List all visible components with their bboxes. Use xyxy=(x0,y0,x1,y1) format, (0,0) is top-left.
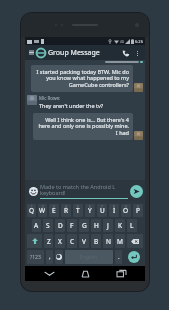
button[interactable]: ?123 xyxy=(27,250,44,264)
staticText: Made to match the Android L keyboard! xyxy=(40,183,128,197)
staticText: 2 xyxy=(42,205,44,209)
button[interactable]: D xyxy=(55,219,65,232)
button[interactable]: 2 xyxy=(38,204,47,217)
button[interactable]: H xyxy=(91,219,101,232)
staticText: A xyxy=(34,221,39,230)
staticText: 9 xyxy=(125,205,127,209)
button[interactable]: K xyxy=(115,219,125,232)
staticText: English xyxy=(80,254,98,261)
button[interactable]: F xyxy=(67,219,77,232)
button[interactable]: Emoji xyxy=(27,185,39,197)
button[interactable]: Send xyxy=(130,185,143,198)
staticText: 5 xyxy=(77,205,79,209)
button[interactable]: I started packing today BTW. Mic do you … xyxy=(31,65,133,92)
staticText: B xyxy=(94,237,99,246)
staticText: 7 xyxy=(101,205,103,209)
staticText: 1 xyxy=(31,205,33,209)
staticText: M xyxy=(117,237,123,246)
button[interactable]: Recent apps xyxy=(109,266,133,281)
staticText: G xyxy=(82,221,87,230)
staticText: 4 xyxy=(65,205,67,209)
staticText: E xyxy=(52,206,56,215)
button[interactable]: 3 xyxy=(49,204,59,217)
staticText: O xyxy=(123,206,129,215)
staticText: 3 xyxy=(53,205,55,209)
button[interactable]: Shift xyxy=(27,234,42,248)
staticText: K xyxy=(118,221,123,230)
button[interactable]: Enter xyxy=(128,251,140,263)
button[interactable]: S xyxy=(43,219,53,232)
staticText: 8 xyxy=(113,205,115,209)
button[interactable]: Well I think one is... But there's 4 her… xyxy=(33,113,133,140)
button[interactable]: Home xyxy=(73,266,97,281)
staticText: T xyxy=(76,206,80,215)
button[interactable]: 4 xyxy=(61,204,71,217)
button[interactable]: , xyxy=(46,250,53,264)
button[interactable]: B xyxy=(91,234,101,248)
staticText: 6 xyxy=(89,205,91,209)
staticText: P xyxy=(136,206,140,215)
button[interactable]: 8 xyxy=(109,204,119,217)
button[interactable]: 5 xyxy=(73,204,83,217)
staticText: F xyxy=(70,221,74,230)
button[interactable]: Menu xyxy=(28,49,35,56)
button[interactable]: More options xyxy=(132,48,142,58)
staticText: I started packing today BTW. Mic do you … xyxy=(35,68,129,89)
button[interactable]: Made to match the Android L keyboard! xyxy=(40,183,128,199)
button[interactable]: A xyxy=(32,219,41,232)
button[interactable]: G xyxy=(79,219,89,232)
button[interactable]: C xyxy=(67,234,77,248)
button[interactable]: 6 xyxy=(85,204,95,217)
staticText: ?123 xyxy=(30,254,41,261)
button[interactable]: App logo xyxy=(35,47,46,58)
staticText: 6:26 xyxy=(135,39,143,44)
button[interactable]: Call xyxy=(120,47,132,59)
button[interactable]: L xyxy=(127,219,137,232)
button[interactable]: M xyxy=(115,234,125,248)
button[interactable]: Mic Rowe: xyxy=(39,95,139,109)
button[interactable]: Z xyxy=(44,234,53,248)
button[interactable]: V xyxy=(79,234,89,248)
staticText: X xyxy=(58,237,62,246)
staticText: They aren't under the tv? xyxy=(39,102,104,109)
staticText: Well I think one is... But there's 4 her… xyxy=(37,116,129,137)
button[interactable]: X xyxy=(55,234,65,248)
button[interactable]: J xyxy=(103,219,113,232)
button[interactable]: 1 xyxy=(27,204,36,217)
button[interactable]: Change language xyxy=(55,250,63,264)
staticText: C xyxy=(70,237,75,246)
button[interactable]: N xyxy=(103,234,113,248)
staticText: Y xyxy=(88,206,92,215)
staticText: Z xyxy=(47,237,51,246)
staticText: . xyxy=(118,253,120,261)
staticText: Group Message xyxy=(48,48,100,58)
staticText: V xyxy=(82,237,86,246)
button[interactable]: Backspace xyxy=(127,234,143,248)
staticText: W xyxy=(39,206,46,215)
staticText: L xyxy=(130,221,134,230)
staticText: 0 xyxy=(137,205,139,209)
staticText: J xyxy=(107,221,109,230)
staticText: H xyxy=(94,221,99,230)
button[interactable]: 9 xyxy=(121,204,131,217)
staticText: D xyxy=(58,221,63,230)
staticText: , xyxy=(49,253,51,261)
staticText: I xyxy=(113,206,116,215)
staticText: N xyxy=(106,237,111,246)
staticText: Q xyxy=(29,206,35,215)
button[interactable]: . xyxy=(115,250,122,264)
staticText: Mic Rowe: xyxy=(39,95,61,101)
staticText: U xyxy=(100,206,105,215)
button[interactable]: Back xyxy=(37,266,61,281)
button[interactable]: 7 xyxy=(97,204,107,217)
staticText: R xyxy=(64,206,69,215)
staticText: S xyxy=(46,221,50,230)
staticText: 4G xyxy=(120,40,124,44)
button[interactable]: 0 xyxy=(133,204,143,217)
